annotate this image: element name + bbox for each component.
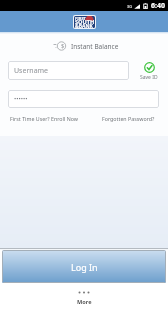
staticText: Save ID — [140, 74, 158, 81]
button[interactable]: $ — [0, 38, 168, 54]
button[interactable]: More — [0, 283, 168, 310]
staticText: More — [77, 298, 92, 306]
staticText: SOUTH — [75, 18, 95, 26]
staticText: Instant Balance — [71, 42, 119, 51]
staticText: 3G — [127, 4, 133, 9]
button[interactable]: First Time User? Enroll Now — [10, 115, 78, 122]
button[interactable]: Log In — [2, 250, 166, 283]
button[interactable]: Username — [8, 61, 129, 80]
staticText: 6:40 — [151, 1, 165, 11]
staticText: Username — [14, 66, 49, 76]
staticText: Log In — [71, 261, 98, 273]
button[interactable]: •••••• — [8, 90, 159, 108]
button[interactable]: Save ID — [134, 62, 164, 81]
button[interactable]: Forgotten Password? — [102, 115, 155, 122]
staticText: FIRST — [75, 16, 86, 21]
staticText: $ — [61, 42, 65, 50]
staticText: &BANK — [75, 23, 93, 28]
staticText: •••••• — [14, 95, 28, 103]
other: First South Bank — [74, 16, 95, 28]
